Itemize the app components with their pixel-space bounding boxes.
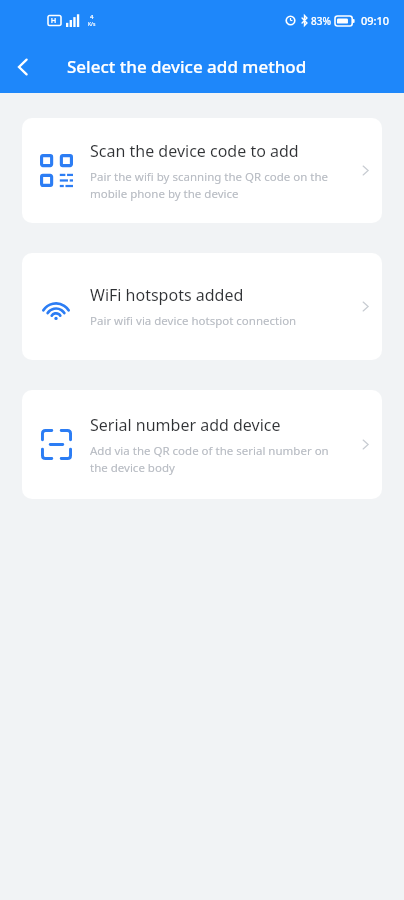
button[interactable]: Serial number add device bbox=[22, 390, 382, 499]
button[interactable]: WiFi hotspots added bbox=[22, 253, 382, 360]
staticText: Pair wifi via device hotspot connection bbox=[90, 313, 297, 329]
staticText: 09:10 bbox=[361, 13, 390, 28]
staticText: WiFi hotspots added bbox=[90, 284, 244, 306]
staticText: 4 bbox=[90, 13, 94, 21]
button[interactable]: Scan the device code to add bbox=[22, 118, 382, 223]
staticText: Serial number add device bbox=[90, 414, 281, 436]
staticText: K/s bbox=[88, 21, 96, 28]
staticText: Add via the QR code of the serial number… bbox=[90, 443, 329, 475]
staticText: Select the device add method bbox=[67, 55, 307, 78]
staticText: 83% bbox=[311, 14, 331, 28]
button[interactable]: Back bbox=[0, 44, 46, 90]
staticText: Pair the wifi by scanning the QR code on… bbox=[90, 169, 328, 201]
staticText: Scan the device code to add bbox=[90, 140, 299, 162]
